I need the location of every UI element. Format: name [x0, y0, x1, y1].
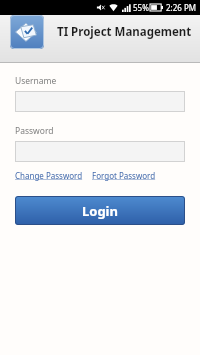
staticText: 55% — [133, 2, 149, 13]
button[interactable] — [15, 141, 185, 162]
staticText: TI Project Management — [57, 24, 192, 40]
staticText: Change Password — [15, 170, 83, 181]
staticText: Login — [82, 202, 118, 220]
button[interactable]: Change Password — [15, 170, 83, 181]
button[interactable]: Login — [15, 196, 185, 225]
staticText: 2:26 PM — [166, 2, 197, 13]
staticText: Password — [15, 125, 54, 137]
staticText: Forgot Password — [92, 170, 156, 181]
button[interactable] — [15, 91, 185, 112]
staticText: Username — [15, 75, 57, 87]
button[interactable]: Forgot Password — [92, 170, 156, 181]
